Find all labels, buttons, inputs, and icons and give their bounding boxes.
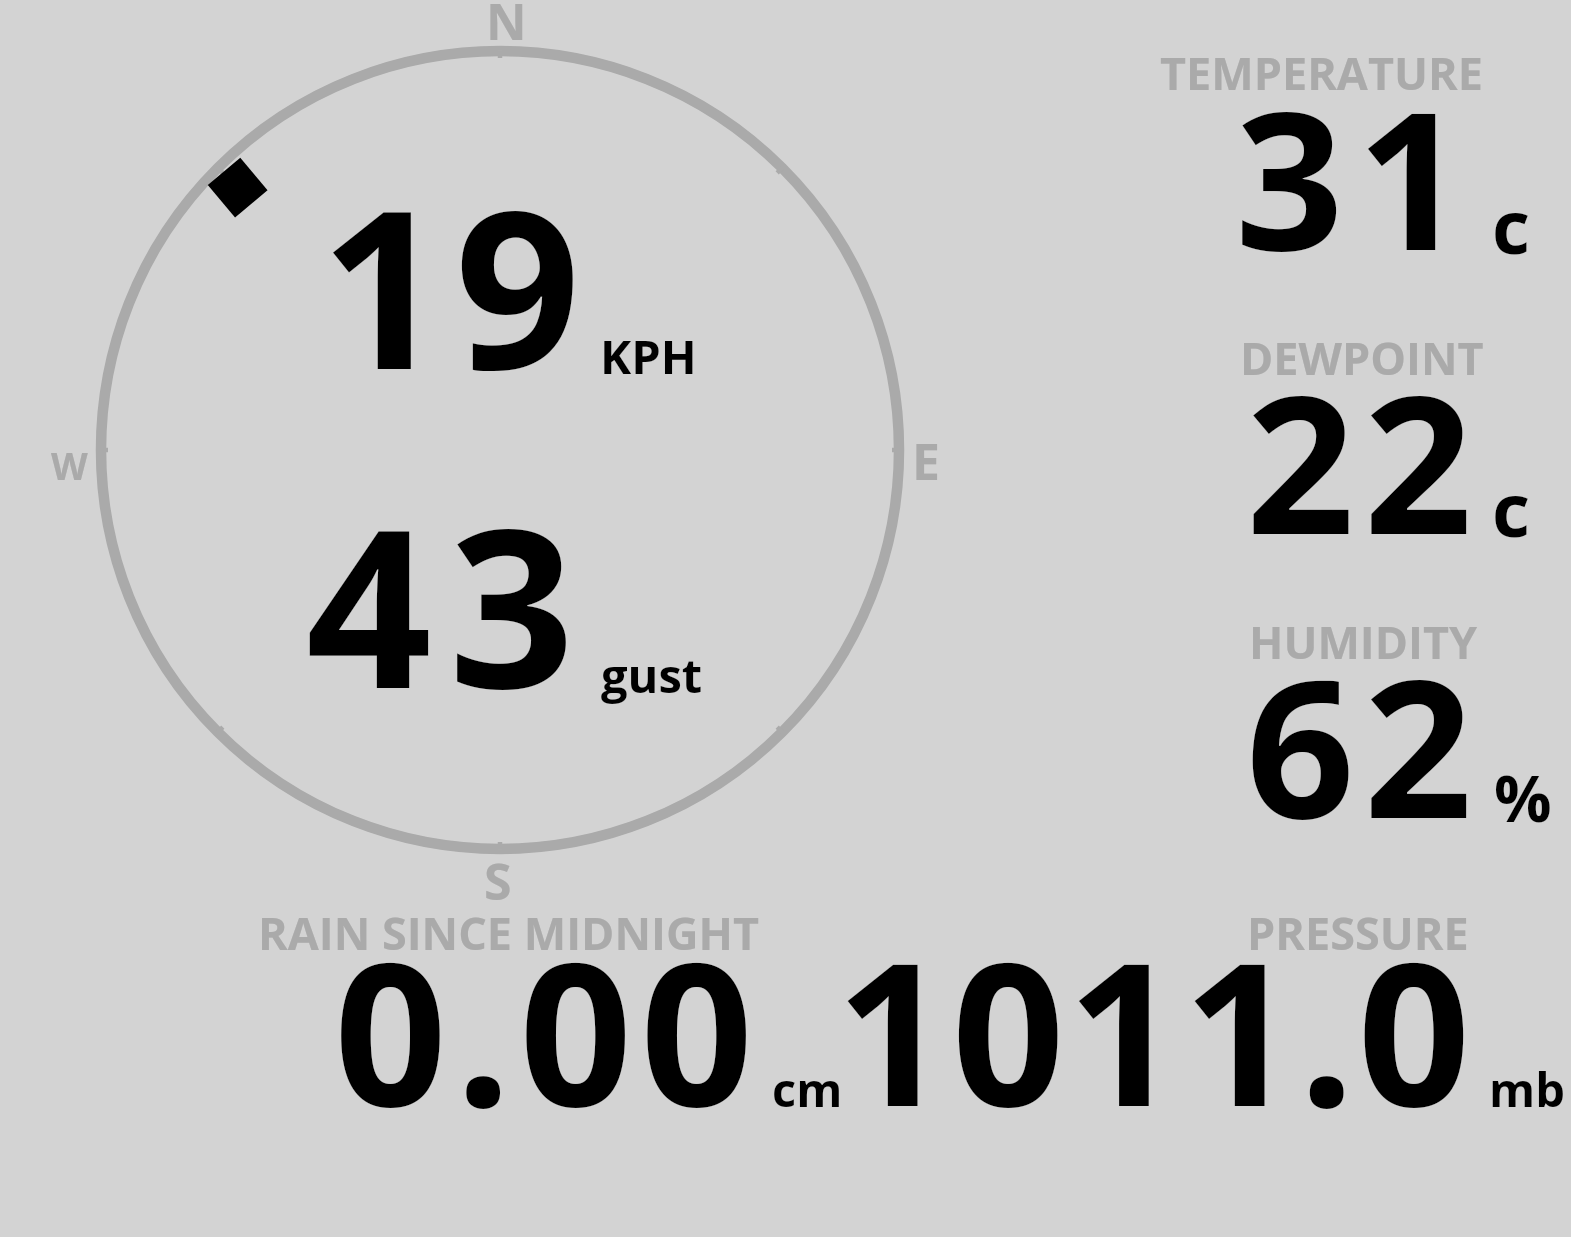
staticText: c <box>1492 458 1531 559</box>
staticText: DEWPOINT <box>1240 327 1484 388</box>
button[interactable]: Rain since midnight 0.00 cm <box>250 900 850 1115</box>
staticText: RAIN SINCE MIDNIGHT <box>258 902 759 963</box>
button[interactable]: Temperature 31 degrees Celsius <box>1150 40 1560 260</box>
staticText: PRESSURE <box>1247 902 1469 963</box>
staticText: 22 <box>1246 331 1482 590</box>
staticText: W <box>51 439 88 491</box>
staticText: TEMPERATURE <box>1160 42 1483 103</box>
staticText: S <box>484 847 512 915</box>
button[interactable]: Dewpoint 22 degrees Celsius <box>1150 325 1560 545</box>
staticText: N <box>486 0 527 55</box>
staticText: 1011.0 <box>836 895 1474 1164</box>
button[interactable]: Wind direction dial, 19 KPH gusting 43, … <box>95 45 905 855</box>
staticText: gust <box>601 643 703 707</box>
button[interactable]: Pressure 1011.0 mb <box>860 900 1560 1115</box>
staticText: mb <box>1489 1057 1565 1121</box>
staticText: E <box>912 427 941 495</box>
staticText: cm <box>772 1057 843 1121</box>
staticText: 31 <box>1235 47 1479 306</box>
staticText: KPH <box>600 324 697 388</box>
staticText: 43 <box>306 453 592 753</box>
staticText: % <box>1494 754 1552 841</box>
staticText: 19 <box>320 134 590 434</box>
staticText: 0.00 <box>334 895 762 1164</box>
staticText: c <box>1492 175 1531 276</box>
staticText: 62 <box>1246 615 1482 874</box>
button[interactable]: Humidity 62 percent <box>1150 610 1560 830</box>
staticText: HUMIDITY <box>1249 611 1478 672</box>
